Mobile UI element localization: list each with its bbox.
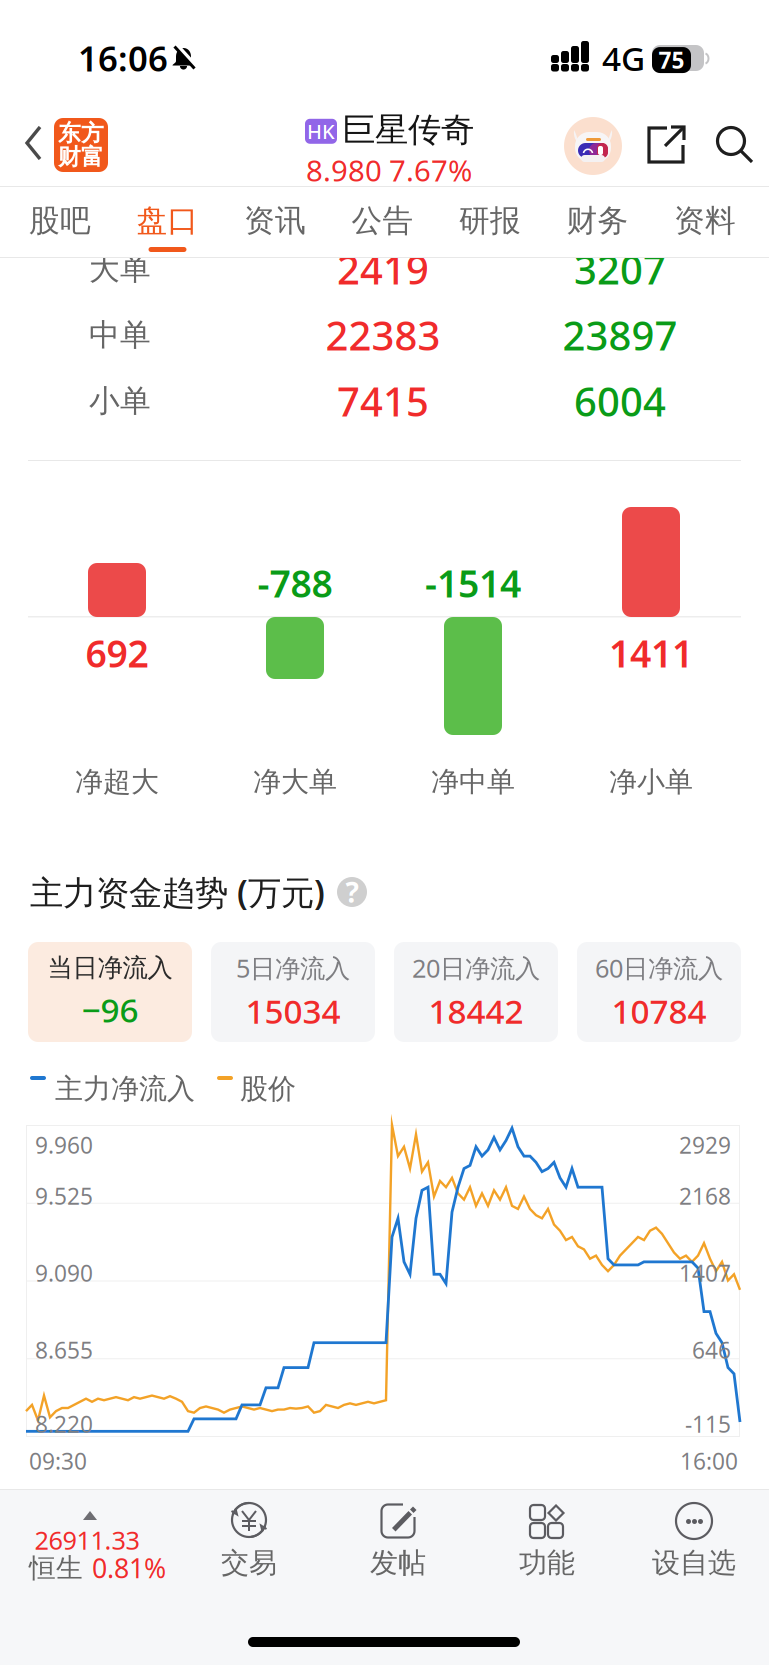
staticText: 15034 bbox=[245, 989, 340, 1033]
staticText: 3207 bbox=[574, 242, 666, 295]
button[interactable]: East Money home bbox=[54, 118, 108, 172]
staticText: 净大单 bbox=[253, 765, 337, 799]
staticText: 16:00 bbox=[680, 1446, 738, 1476]
staticText: 18442 bbox=[428, 989, 523, 1033]
staticText: 发帖 bbox=[370, 1546, 426, 1580]
button[interactable]: 当日净流入 bbox=[28, 942, 192, 1042]
staticText: 净超大 bbox=[75, 765, 159, 799]
staticText: 75 bbox=[658, 45, 684, 75]
staticText: 1411 bbox=[609, 628, 693, 678]
staticText: -788 bbox=[257, 558, 332, 608]
staticText: 2419 bbox=[337, 242, 429, 295]
staticText: 研报 bbox=[459, 202, 521, 240]
button[interactable]: Hang Seng index 26911.33 up 0.81 percent bbox=[14, 1491, 180, 1587]
staticText: 22383 bbox=[325, 308, 440, 361]
button[interactable]: 功能 bbox=[487, 1492, 607, 1586]
staticText: -1514 bbox=[425, 558, 521, 608]
staticText: 6004 bbox=[574, 374, 666, 427]
staticText: 净中单 bbox=[431, 765, 515, 799]
button[interactable]: 资讯 bbox=[222, 193, 328, 255]
staticText: 财富 bbox=[58, 143, 104, 171]
staticText: 净小单 bbox=[609, 765, 693, 799]
staticText: 23897 bbox=[562, 308, 677, 361]
staticText: 9.960 bbox=[35, 1130, 93, 1160]
staticText: 东方 bbox=[58, 119, 104, 147]
staticText: 8.220 bbox=[35, 1409, 93, 1439]
button[interactable]: 交易 bbox=[189, 1492, 309, 1586]
staticText: 主力净流入 bbox=[55, 1072, 195, 1106]
staticText: 8.980 bbox=[306, 150, 382, 189]
button[interactable]: 公告 bbox=[329, 193, 435, 255]
staticText: 设自选 bbox=[652, 1546, 736, 1580]
button[interactable]: 20日净流入 bbox=[394, 942, 558, 1042]
button[interactable]: 设自选 bbox=[634, 1492, 754, 1586]
button[interactable]: Share bbox=[645, 124, 689, 168]
button[interactable]: 发帖 bbox=[338, 1492, 458, 1586]
staticText: 5日净流入 bbox=[236, 951, 350, 985]
staticText: 4G bbox=[602, 36, 645, 80]
button[interactable]: 股吧 bbox=[7, 193, 113, 255]
staticText: 09:30 bbox=[29, 1446, 87, 1476]
staticText: 股吧 bbox=[29, 202, 91, 240]
staticText: 2929 bbox=[679, 1130, 731, 1160]
staticText: 盘口 bbox=[136, 202, 198, 240]
button[interactable]: 60日净流入 bbox=[577, 942, 741, 1042]
staticText: 资讯 bbox=[244, 202, 306, 240]
button[interactable]: Back bbox=[14, 118, 54, 168]
staticText: 9.525 bbox=[35, 1181, 93, 1211]
staticText: 巨星传奇 bbox=[342, 109, 474, 150]
button[interactable]: 研报 bbox=[437, 193, 543, 255]
staticText: 20日净流入 bbox=[412, 951, 540, 985]
staticText: 功能 bbox=[519, 1546, 575, 1580]
staticText: 大单 bbox=[89, 250, 151, 288]
staticText: 9.090 bbox=[35, 1258, 93, 1288]
staticText: 财务 bbox=[566, 202, 628, 240]
staticText: 8.655 bbox=[35, 1335, 93, 1365]
button[interactable]: 资料 bbox=[652, 193, 758, 255]
staticText: 7.67% bbox=[389, 150, 472, 189]
staticText: 26911.33 bbox=[34, 1523, 139, 1557]
staticText: 7415 bbox=[337, 374, 429, 427]
staticText: 资料 bbox=[674, 202, 736, 240]
button[interactable]: 财务 bbox=[544, 193, 650, 255]
staticText: 0.81% bbox=[92, 1550, 166, 1586]
staticText: 646 bbox=[692, 1335, 731, 1365]
button[interactable]: 盘口 bbox=[114, 193, 220, 255]
staticText: -115 bbox=[685, 1409, 731, 1439]
staticText: 692 bbox=[85, 628, 148, 678]
button[interactable]: AI assistant bbox=[564, 117, 622, 175]
staticText: 16:06 bbox=[78, 35, 168, 81]
staticText: −96 bbox=[81, 987, 138, 1032]
staticText: 中单 bbox=[89, 316, 151, 354]
staticText: 60日净流入 bbox=[595, 951, 723, 985]
staticText: 主力资金趋势 (万元) bbox=[30, 870, 325, 914]
staticText: 当日净流入 bbox=[47, 952, 172, 983]
staticText: ? bbox=[345, 873, 358, 911]
button[interactable]: 5日净流入 bbox=[211, 942, 375, 1042]
staticText: 小单 bbox=[89, 382, 151, 420]
staticText: 2168 bbox=[679, 1181, 731, 1211]
staticText: 交易 bbox=[221, 1546, 277, 1580]
staticText: 1407 bbox=[679, 1258, 731, 1288]
staticText: 公告 bbox=[351, 202, 413, 240]
staticText: 恒生 bbox=[29, 1552, 83, 1584]
staticText: HK bbox=[307, 118, 335, 145]
staticText: 10784 bbox=[611, 989, 706, 1033]
button[interactable]: Search bbox=[713, 124, 757, 168]
staticText: 股价 bbox=[240, 1072, 296, 1106]
